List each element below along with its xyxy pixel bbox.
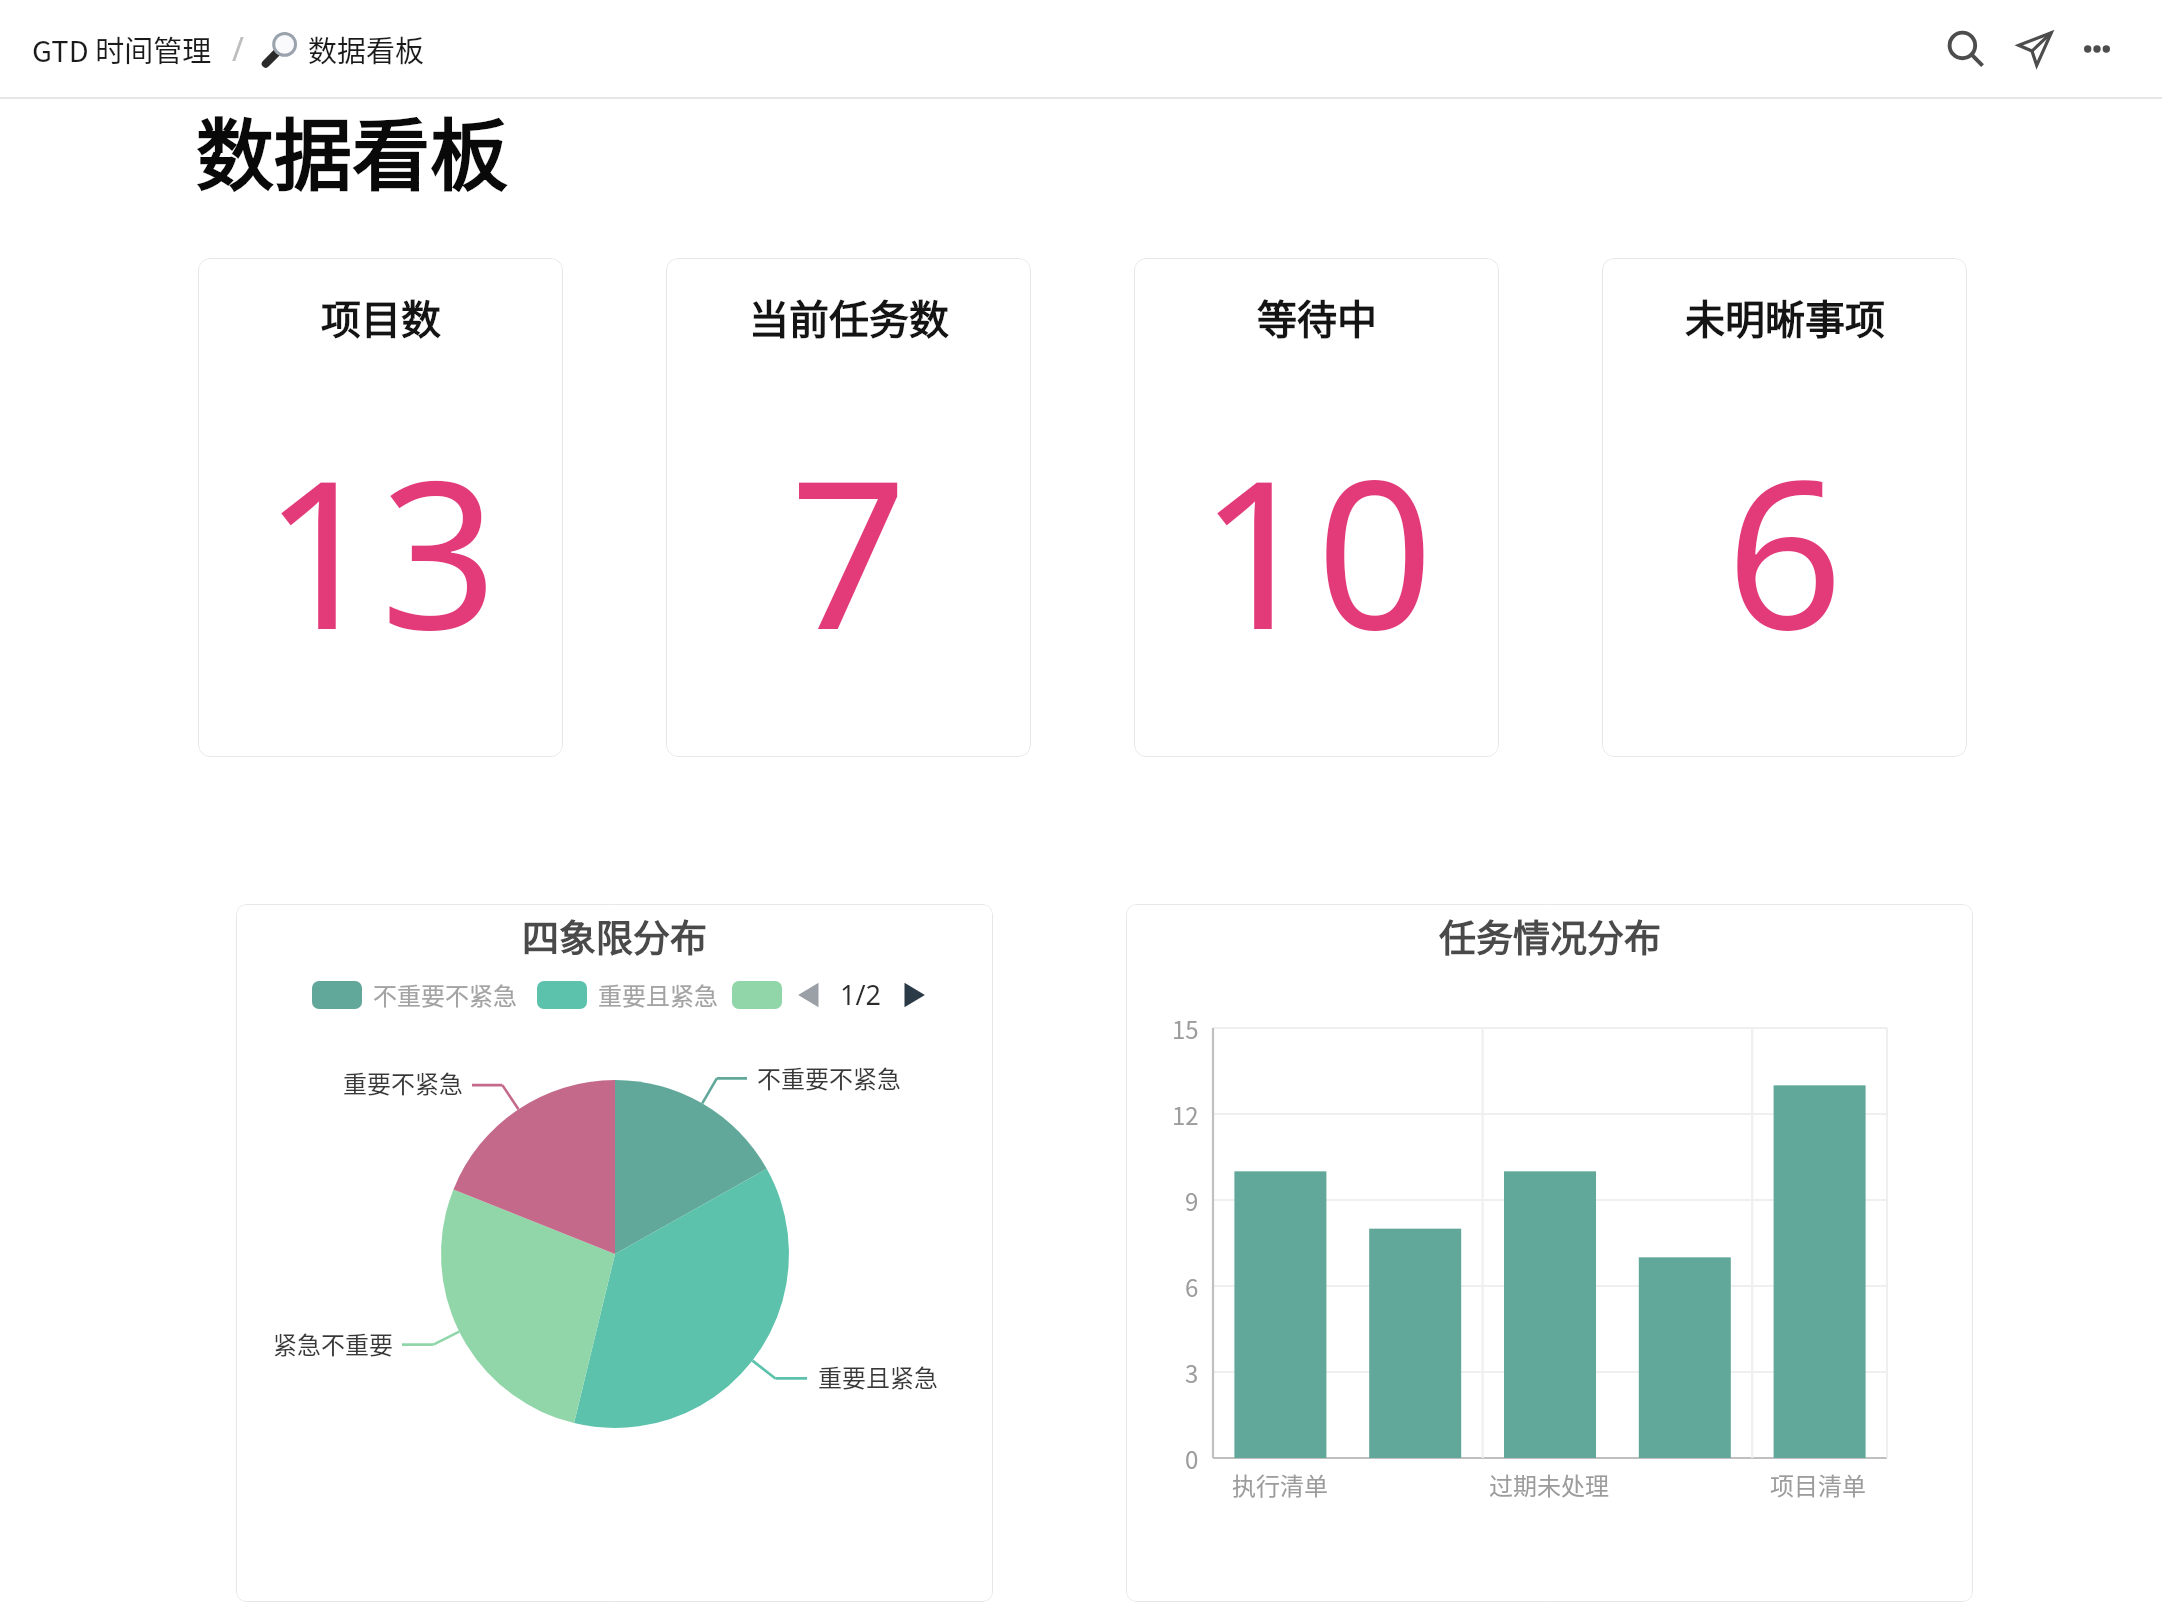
staticText: GTD 时间管理 bbox=[32, 28, 212, 70]
staticText: 数据看板 bbox=[196, 94, 509, 207]
button[interactable]: 数据看板 bbox=[259, 28, 425, 70]
staticText: 任务情况分布 bbox=[1439, 909, 1661, 963]
button[interactable]: Share bbox=[2007, 21, 2063, 77]
button[interactable]: 当前任务数 bbox=[666, 258, 1031, 757]
staticText: 7 bbox=[790, 410, 908, 689]
staticText: 等待中 bbox=[1257, 288, 1377, 346]
button[interactable]: Search bbox=[1938, 21, 1994, 77]
staticText: 3 bbox=[1185, 1355, 1199, 1390]
button[interactable]: 等待中 bbox=[1134, 258, 1499, 757]
staticText: 重要且紧急 bbox=[818, 1359, 938, 1394]
staticText: 不重要不紧急 bbox=[373, 977, 517, 1012]
staticText: 12 bbox=[1172, 1097, 1199, 1132]
staticText: 0 bbox=[1185, 1441, 1199, 1476]
staticText: 当前任务数 bbox=[749, 288, 949, 346]
button[interactable]: 项目数 bbox=[198, 258, 563, 757]
staticText: 10 bbox=[1199, 410, 1434, 689]
staticText: 重要且紧急 bbox=[598, 977, 718, 1012]
staticText: 15 bbox=[1172, 1011, 1199, 1046]
button[interactable]: GTD 时间管理 bbox=[32, 28, 212, 70]
button[interactable] bbox=[732, 981, 782, 1009]
staticText: 6 bbox=[1726, 410, 1844, 689]
staticText: 1/2 bbox=[840, 976, 881, 1013]
staticText: 6 bbox=[1185, 1269, 1199, 1304]
button[interactable]: Next page bbox=[897, 978, 931, 1012]
staticText: 执行清单 bbox=[1232, 1467, 1328, 1502]
button[interactable]: Previous page bbox=[792, 978, 826, 1012]
button[interactable]: 未明晰事项 bbox=[1602, 258, 1967, 757]
staticText: / bbox=[232, 27, 244, 71]
staticText: 过期未处理 bbox=[1489, 1467, 1609, 1502]
button[interactable]: More options bbox=[2069, 21, 2125, 77]
staticText: 重要不紧急 bbox=[343, 1065, 463, 1100]
staticText: 紧急不重要 bbox=[273, 1326, 393, 1361]
staticText: 项目数 bbox=[321, 288, 441, 346]
staticText: 13 bbox=[263, 410, 498, 689]
staticText: 项目清单 bbox=[1770, 1467, 1866, 1502]
button[interactable]: 不重要不紧急 bbox=[312, 977, 517, 1012]
button[interactable]: 重要且紧急 bbox=[537, 977, 718, 1012]
staticText: 数据看板 bbox=[308, 28, 425, 70]
staticText: 9 bbox=[1185, 1183, 1199, 1218]
staticText: 未明晰事项 bbox=[1685, 288, 1885, 346]
staticText: 四象限分布 bbox=[522, 909, 707, 963]
staticText: 不重要不紧急 bbox=[757, 1060, 901, 1095]
